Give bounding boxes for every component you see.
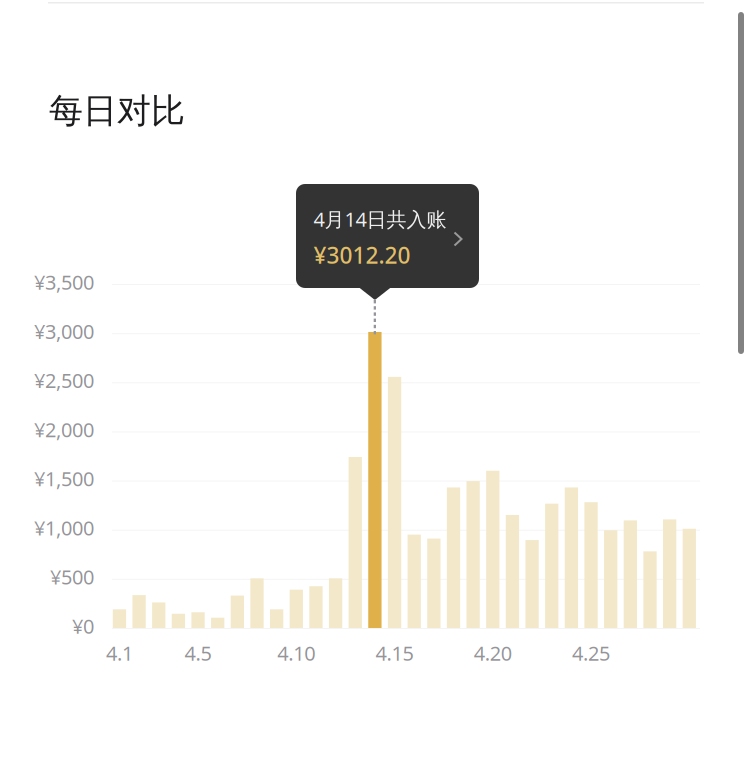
button[interactable]: 4月14日共入账 xyxy=(296,184,479,298)
staticText: 4月14日共入账 xyxy=(313,206,446,232)
staticText: ¥2,500 xyxy=(34,367,94,394)
staticText: 4.15 xyxy=(375,640,413,666)
staticText: ¥2,000 xyxy=(34,416,94,443)
staticText: ¥3,000 xyxy=(34,318,94,344)
staticText: 4.20 xyxy=(474,640,512,666)
staticText: ¥1,000 xyxy=(34,514,94,541)
staticText: 4.25 xyxy=(572,640,610,666)
staticText: ¥3012.20 xyxy=(313,240,410,270)
staticText: ¥1,500 xyxy=(34,465,94,492)
staticText: ¥3,500 xyxy=(34,269,94,295)
staticText: 4.10 xyxy=(277,640,315,666)
staticText: 4.1 xyxy=(106,640,133,666)
staticText: 每日对比 xyxy=(49,90,185,132)
staticText: 4.5 xyxy=(184,640,211,666)
staticText: ¥500 xyxy=(50,564,94,590)
staticText: ¥0 xyxy=(72,613,94,639)
